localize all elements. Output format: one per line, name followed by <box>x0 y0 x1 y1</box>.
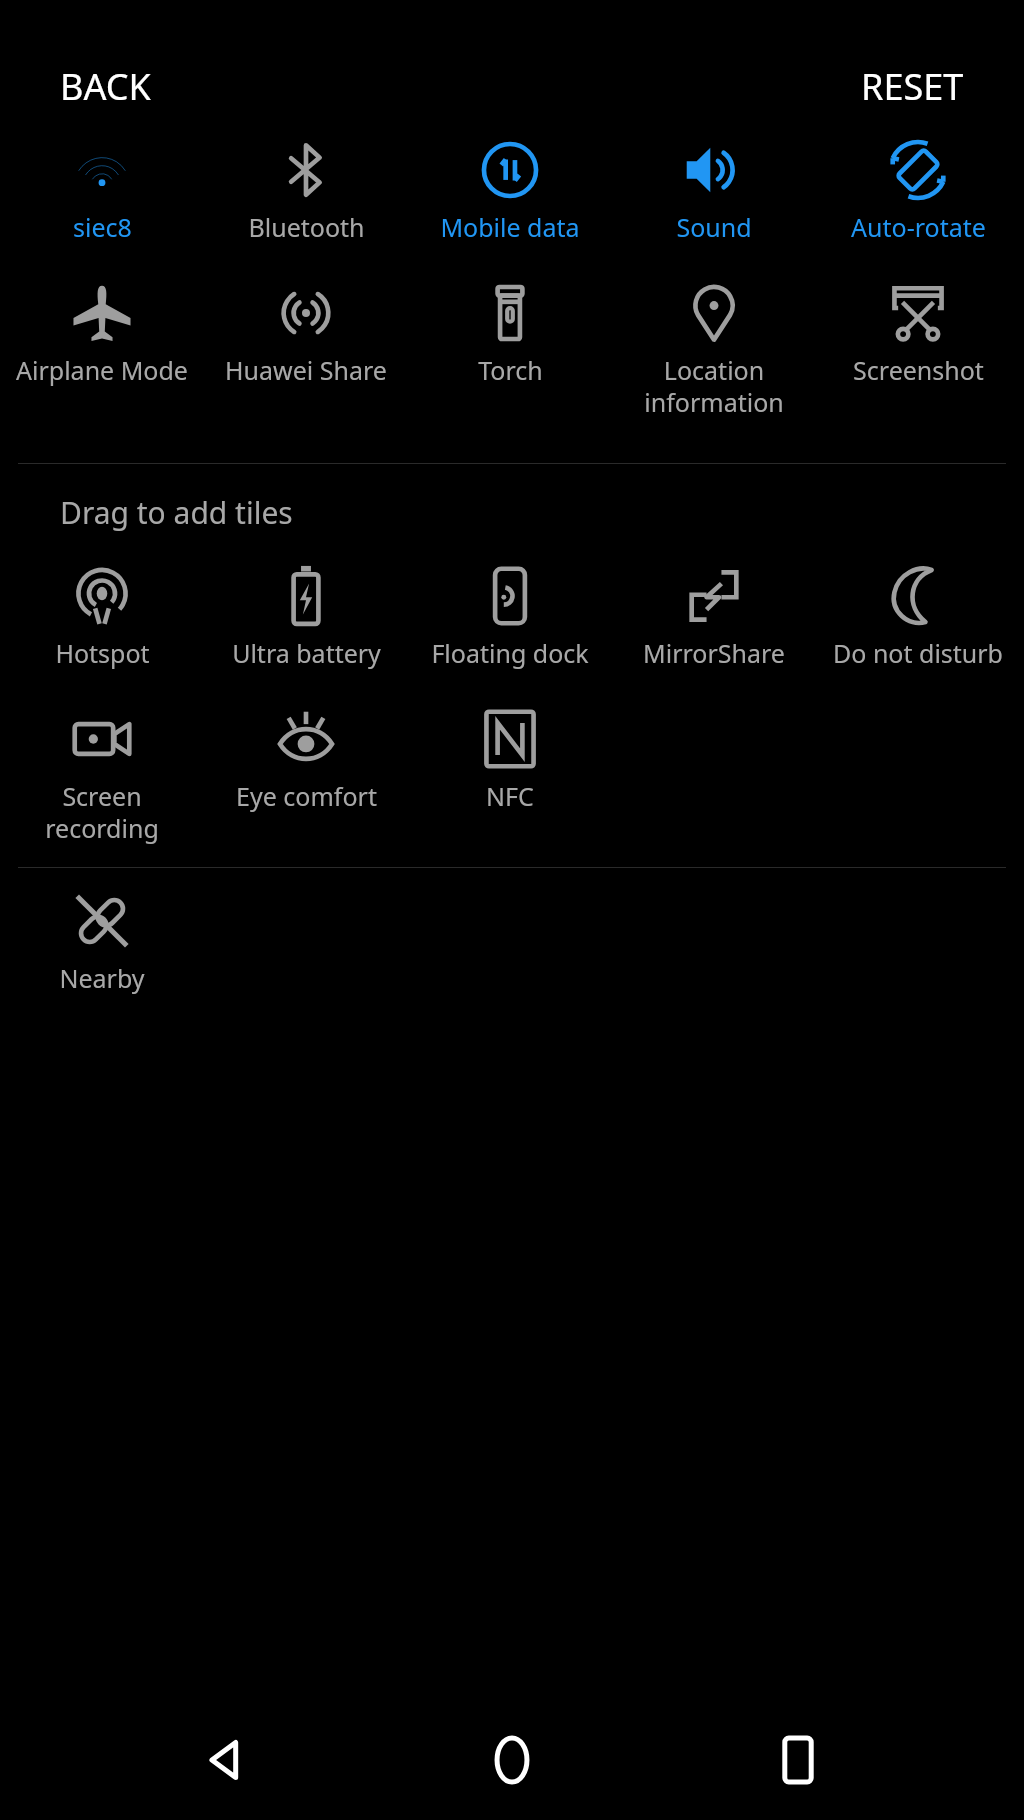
staticText: BACK <box>60 62 151 111</box>
staticText: Mobile data <box>440 210 580 244</box>
button[interactable]: NFC <box>408 708 612 813</box>
staticText: Huawei Share <box>225 353 387 387</box>
other: Screen recording <box>71 708 133 770</box>
button[interactable]: Floating dock <box>408 565 612 670</box>
staticText: NFC <box>486 779 534 813</box>
staticText: Do not disturb <box>833 636 1003 670</box>
button[interactable]: Screen recording <box>0 708 204 845</box>
other: Huawei Share <box>275 282 337 344</box>
button[interactable]: Huawei Share <box>204 282 408 387</box>
other: Torch <box>479 282 541 344</box>
staticText: MirrorShare <box>643 636 785 670</box>
staticText: Ultra battery <box>232 636 381 670</box>
staticText: Floating dock <box>431 636 589 670</box>
staticText: Auto-rotate <box>851 210 986 244</box>
other: Location information <box>683 282 745 344</box>
other: NFC <box>479 708 541 770</box>
button[interactable]: Home <box>452 1700 572 1820</box>
other: Screenshot <box>887 282 949 344</box>
other: Auto-rotate <box>887 139 949 201</box>
staticText: Bluetooth <box>248 210 365 244</box>
staticText: Airplane Mode <box>16 353 188 387</box>
staticText: Screen recording <box>45 779 159 845</box>
other: Bluetooth <box>275 139 337 201</box>
button[interactable]: BACK <box>60 62 151 111</box>
button[interactable]: Bluetooth <box>204 139 408 244</box>
button[interactable]: Do not disturb <box>816 565 1020 670</box>
other: Airplane Mode <box>71 282 133 344</box>
staticText: Location information <box>644 353 784 419</box>
button[interactable]: siec8 <box>0 139 204 244</box>
other: Eye comfort <box>275 708 337 770</box>
button[interactable]: Eye comfort <box>204 708 408 813</box>
staticText: Hotspot <box>55 636 150 670</box>
button[interactable]: Nearby <box>0 890 204 995</box>
other: Do not disturb <box>887 565 949 627</box>
staticText: Torch <box>478 353 543 387</box>
button[interactable]: MirrorShare <box>612 565 816 670</box>
button[interactable]: Back <box>166 1700 286 1820</box>
other: Hotspot <box>71 565 133 627</box>
button[interactable]: Hotspot <box>0 565 204 670</box>
staticText: RESET <box>861 62 964 111</box>
button[interactable]: Ultra battery <box>204 565 408 670</box>
other: Mobile data <box>479 139 541 201</box>
other: Ultra battery <box>275 565 337 627</box>
other: Floating dock <box>479 565 541 627</box>
other: Nearby <box>71 890 133 952</box>
button[interactable]: Screenshot <box>816 282 1020 387</box>
button[interactable]: RESET <box>861 62 964 111</box>
staticText: Drag to add tiles <box>60 492 293 533</box>
button[interactable]: Auto-rotate <box>816 139 1020 244</box>
other: siec8 <box>71 139 133 201</box>
staticText: Eye comfort <box>236 779 377 813</box>
button[interactable]: Airplane Mode <box>0 282 204 387</box>
other: MirrorShare <box>683 565 745 627</box>
staticText: Sound <box>676 210 752 244</box>
staticText: Nearby <box>59 961 145 995</box>
staticText: Screenshot <box>853 353 984 387</box>
button[interactable]: Torch <box>408 282 612 387</box>
staticText: siec8 <box>73 210 132 244</box>
other: Sound <box>683 139 745 201</box>
button[interactable]: Sound <box>612 139 816 244</box>
button[interactable]: Recents <box>738 1700 858 1820</box>
button[interactable]: Location information <box>612 282 816 419</box>
button[interactable]: Mobile data <box>408 139 612 244</box>
